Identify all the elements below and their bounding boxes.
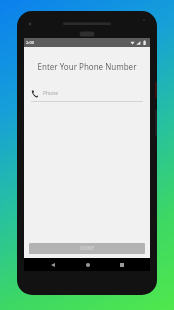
staticText: DONE bbox=[80, 245, 95, 252]
button[interactable]: DONE bbox=[29, 243, 145, 254]
staticText: Phone bbox=[43, 90, 59, 97]
button[interactable]: Recents bbox=[115, 258, 128, 271]
other: Phone bbox=[31, 90, 38, 97]
button[interactable]: Home bbox=[81, 258, 94, 271]
staticText: Enter Your Phone Number bbox=[24, 61, 150, 72]
staticText: 2:00 bbox=[26, 40, 34, 45]
button[interactable]: Phone bbox=[31, 90, 143, 102]
button[interactable]: Back bbox=[46, 258, 59, 271]
